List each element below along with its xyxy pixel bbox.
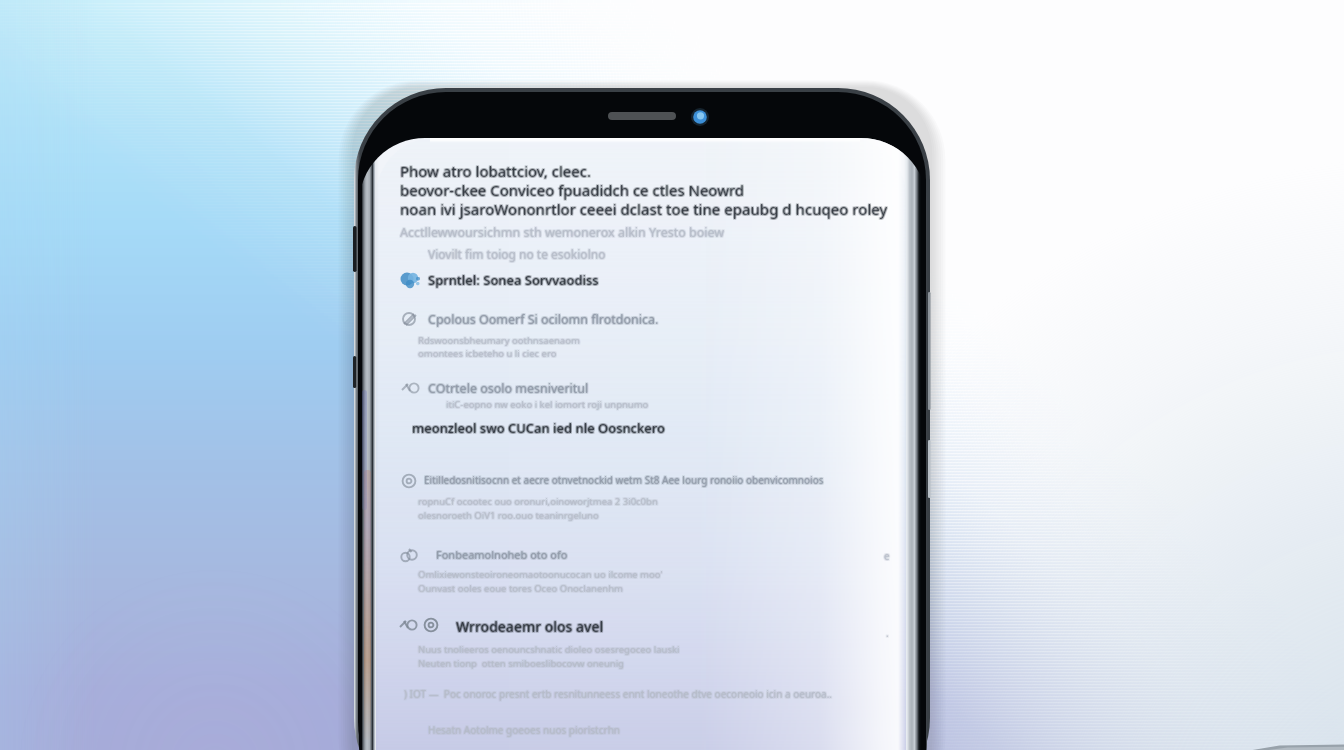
button[interactable]: App icon [400, 270, 422, 290]
staticText: Neuten tionp otten smiboeslibocovw oneun… [418, 656, 624, 669]
staticText: e [885, 548, 891, 562]
staticText: meonzleol swo CUCan ied nle Oosnckero [413, 420, 666, 438]
staticText: olesnoroeth OiV1 roo.ouo teaninrgeluno [417, 510, 598, 523]
staticText: Cpolous Oomerf Si ocilomn flrotdonica. [427, 311, 658, 328]
staticText: Sprntlel: Sonea Sorvvaodiss [427, 271, 598, 289]
button[interactable]: Row icon [422, 616, 442, 634]
staticText: Wrrodeaemr olos avel [457, 616, 605, 635]
staticText: omontees icbeteho u li ciec ero [418, 348, 557, 361]
staticText: Acctllewwoursichmn sth wemonerox alkin Y… [399, 224, 724, 241]
staticText: Acctllewwoursichmn sth wemonerox alkin Y… [399, 225, 724, 242]
staticText: Eitilledosnitisocnn et aecre otnvetnocki… [423, 474, 823, 488]
staticText: Nuus tnolieeros oenouncshnatic dioleo os… [417, 642, 679, 655]
staticText: Cpolous Oomerf Si ocilomn flrotdonica. [429, 311, 660, 328]
staticText: Cpolous Oomerf Si ocilomn flrotdonica. [428, 312, 659, 329]
staticText: Eitilledosnitisocnn et aecre otnvetnocki… [423, 473, 823, 487]
staticText: noan ivi jsaroWononrtlor ceeei dclast to… [400, 200, 888, 220]
button[interactable]: Row icon [400, 546, 420, 564]
staticText: . [887, 627, 890, 641]
staticText: Rdswoonsbheumary oothnsaenaom [417, 333, 579, 346]
staticText: noan ivi jsaroWononrtlor ceeei dclast to… [400, 199, 888, 219]
staticText: Acctllewwoursichmn sth wemonerox alkin Y… [400, 224, 725, 241]
button[interactable]: Row icon [400, 472, 420, 490]
staticText: Fonbeamolnoheb oto ofo [437, 546, 569, 561]
button[interactable]: Row icon [398, 616, 418, 634]
staticText: itiC-eopno nw eoko i kel iomort roji unp… [445, 399, 648, 412]
staticText: olesnoroeth OiV1 roo.ouo teaninrgeluno [419, 508, 600, 521]
staticText: Phow atro lobattciov, cleec. [400, 162, 591, 182]
staticText: Acctllewwoursichmn sth wemonerox alkin Y… [401, 223, 726, 240]
staticText: omontees icbeteho u li ciec ero [417, 347, 556, 360]
staticText: Rdswoonsbheumary oothnsaenaom [417, 335, 579, 348]
staticText: COtrtele osolo mesniveritul [428, 381, 589, 398]
staticText: Sprntlel: Sonea Sorvvaodiss [428, 270, 599, 288]
staticText: Rdswoonsbheumary oothnsaenaom [418, 333, 580, 346]
staticText: COtrtele osolo mesniveritul [429, 380, 590, 397]
staticText: beovor-ckee Conviceo fpuadidch ce ctles … [399, 180, 744, 200]
staticText: Phow atro lobattciov, cleec. [400, 161, 591, 181]
staticText: noan ivi jsaroWononrtlor ceeei dclast to… [401, 199, 889, 219]
staticText: Omlixiewonsteoironeomaotoonucocan uo ilc… [418, 569, 663, 582]
staticText: meonzleol swo CUCan ied nle Oosnckero [413, 418, 666, 436]
staticText: omontees icbeteho u li ciec ero [419, 346, 558, 359]
staticText: COtrtele osolo mesniveritul [427, 380, 588, 397]
staticText: Omlixiewonsteoironeomaotoonucocan uo ilc… [419, 567, 664, 580]
staticText: . [887, 625, 890, 639]
staticText: Wrrodeaemr olos avel [457, 618, 605, 637]
staticText: noan ivi jsaroWononrtlor ceeei dclast to… [401, 200, 889, 220]
staticText: Neuten tionp otten smiboeslibocovw oneun… [419, 658, 625, 671]
staticText: COtrtele osolo mesniveritul [428, 379, 589, 396]
staticText: Viovilt fim toiog no te esokiolno [427, 246, 605, 262]
staticText: Sprntlel: Sonea Sorvvaodiss [429, 270, 600, 288]
staticText: Eitilledosnitisocnn et aecre otnvetnocki… [423, 472, 823, 486]
staticText: ropnuCf ocootec ouo oronuri,oinoworjtmea… [419, 496, 659, 509]
staticText: Nuus tnolieeros oenouncshnatic dioleo os… [419, 643, 681, 656]
staticText: e [884, 550, 890, 564]
staticText: Fonbeamolnoheb oto ofo [435, 547, 567, 562]
staticText: e [884, 548, 890, 562]
staticText: itiC-eopno nw eoko i kel iomort roji unp… [445, 398, 648, 411]
staticText: Nuus tnolieeros oenouncshnatic dioleo os… [419, 642, 681, 655]
staticText: olesnoroeth OiV1 roo.ouo teaninrgeluno [419, 510, 600, 523]
staticText: Fonbeamolnoheb oto ofo [435, 546, 567, 561]
staticText: COtrtele osolo mesniveritul [428, 380, 589, 397]
button[interactable]: Row icon [400, 310, 420, 328]
staticText: Neuten tionp otten smiboeslibocovw oneun… [418, 657, 624, 670]
staticText: Acctllewwoursichmn sth wemonerox alkin Y… [400, 225, 725, 242]
staticText: itiC-eopno nw eoko i kel iomort roji unp… [447, 397, 650, 410]
staticText: Eitilledosnitisocnn et aecre otnvetnocki… [424, 472, 824, 486]
staticText: Ounvast ooles eoue tores Oceo Onoclanenh… [419, 581, 624, 594]
staticText: e [885, 549, 891, 563]
staticText: Nuus tnolieeros oenouncshnatic dioleo os… [418, 644, 680, 657]
staticText: Ounvast ooles eoue tores Oceo Onoclanenh… [418, 582, 623, 595]
staticText: Ounvast ooles eoue tores Oceo Onoclanenh… [418, 581, 623, 594]
staticText: . [885, 626, 888, 640]
staticText: Eitilledosnitisocnn et aecre otnvetnocki… [425, 474, 825, 488]
staticText: olesnoroeth OiV1 roo.ouo teaninrgeluno [418, 508, 599, 521]
staticText: ) IOT — Poc onoroc presnt ertb resnitunn… [403, 688, 832, 702]
staticText: Neuten tionp otten smiboeslibocovw oneun… [417, 658, 623, 671]
staticText: noan ivi jsaroWononrtlor ceeei dclast to… [401, 198, 889, 218]
staticText: Fonbeamolnoheb oto ofo [437, 547, 569, 562]
staticText: Neuten tionp otten smiboeslibocovw oneun… [417, 656, 623, 669]
staticText: Acctllewwoursichmn sth wemonerox alkin Y… [401, 225, 726, 242]
staticText: Eitilledosnitisocnn et aecre otnvetnocki… [424, 473, 824, 487]
staticText: meonzleol swo CUCan ied nle Oosnckero [412, 418, 665, 436]
staticText: omontees icbeteho u li ciec ero [418, 347, 557, 360]
staticText: . [886, 625, 889, 639]
staticText: Omlixiewonsteoironeomaotoonucocan uo ilc… [417, 568, 662, 581]
staticText: Fonbeamolnoheb oto ofo [437, 548, 569, 563]
button[interactable]: Row icon [400, 379, 420, 397]
staticText: Wrrodeaemr olos avel [456, 617, 604, 636]
staticText: Cpolous Oomerf Si ocilomn flrotdonica. [428, 310, 659, 327]
staticText: Viovilt fim toiog no te esokiolno [429, 247, 607, 263]
staticText: Sprntlel: Sonea Sorvvaodiss [429, 272, 600, 290]
staticText: Neuten tionp otten smiboeslibocovw oneun… [419, 657, 625, 670]
staticText: COtrtele osolo mesniveritul [429, 379, 590, 396]
staticText: Sprntlel: Sonea Sorvvaodiss [428, 272, 599, 290]
staticText: Phow atro lobattciov, cleec. [401, 161, 592, 181]
staticText: meonzleol swo CUCan ied nle Oosnckero [411, 419, 664, 437]
staticText: beovor-ckee Conviceo fpuadidch ce ctles … [401, 181, 746, 201]
staticText: ropnuCf ocootec ouo oronuri,oinoworjtmea… [417, 496, 657, 509]
staticText: Neuten tionp otten smiboeslibocovw oneun… [418, 658, 624, 671]
